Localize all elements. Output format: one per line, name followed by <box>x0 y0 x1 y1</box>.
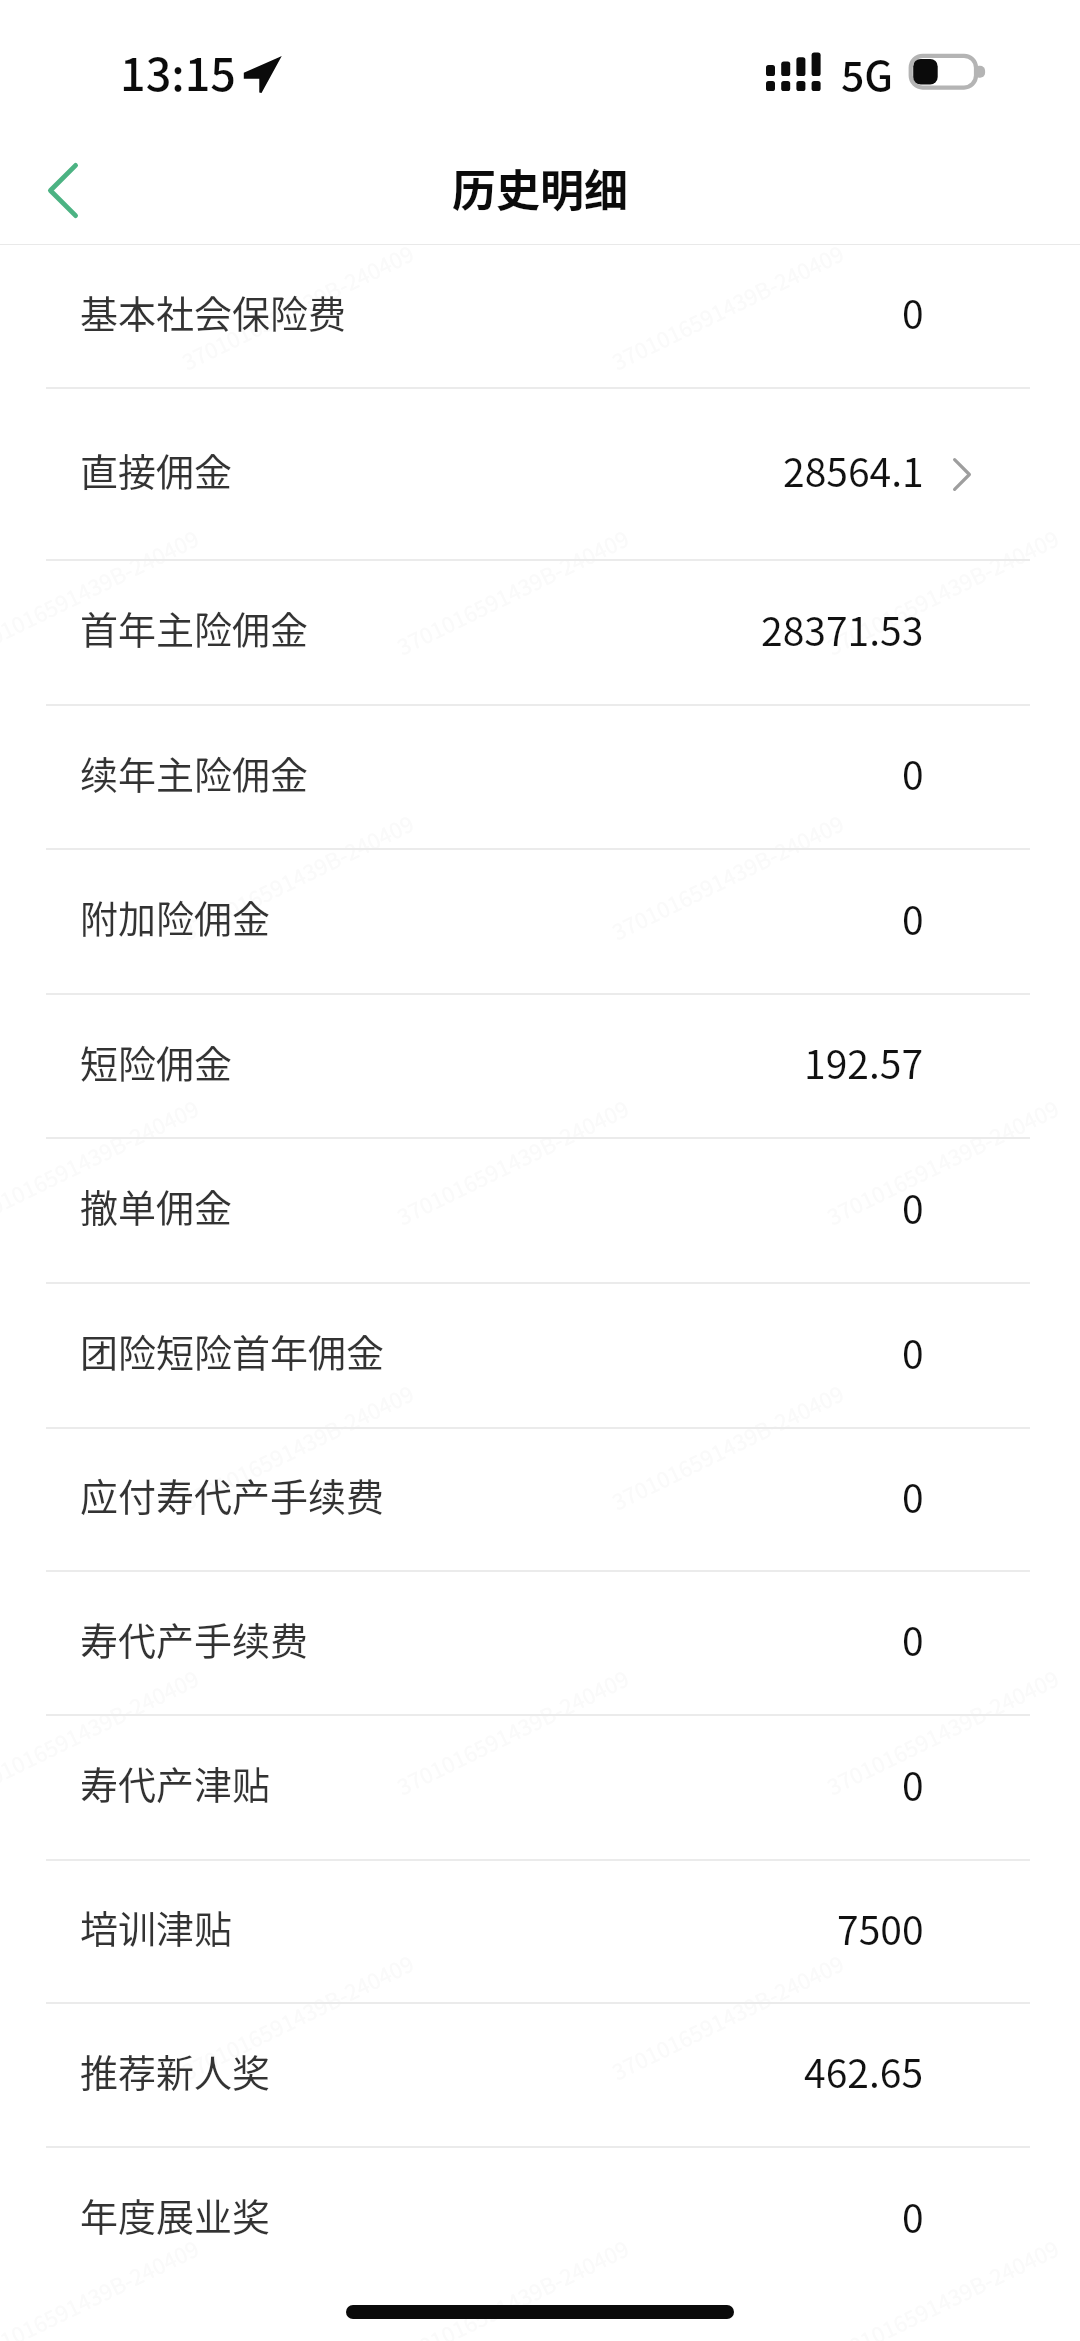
staticText: 3701016591439B-240409 <box>821 1661 1064 1801</box>
staticText: 5G <box>841 43 894 102</box>
staticText: 应付寿代产手续费 <box>80 1467 385 1522</box>
staticText: 首年主险佣金 <box>80 600 309 655</box>
staticText: 年度展业奖 <box>80 2187 271 2242</box>
staticText: 0 <box>902 2188 924 2244</box>
staticText: 寿代产手续费 <box>80 1611 309 1666</box>
staticText: 0 <box>902 1756 924 1812</box>
staticText: 0 <box>902 1179 924 1235</box>
staticText: 0 <box>902 1468 924 1524</box>
button[interactable]: 培训津贴 <box>0 1861 1080 2004</box>
staticText: 3701016591439B-240409 <box>176 1376 419 1516</box>
button[interactable]: Back <box>18 145 108 235</box>
staticText: 192.57 <box>804 1034 924 1090</box>
staticText: 0 <box>902 1324 924 1380</box>
staticText: 附加险佣金 <box>80 889 271 944</box>
staticText: 28371.53 <box>761 601 924 657</box>
staticText: 3701016591439B-240409 <box>176 1946 419 2086</box>
staticText: 推荐新人奖 <box>80 2043 271 2098</box>
staticText: 培训津贴 <box>80 1899 233 1954</box>
button[interactable]: 续年主险佣金 <box>0 706 1080 850</box>
button[interactable]: 直接佣金 <box>0 389 1080 561</box>
staticText: 3701016591439B-240409 <box>0 521 204 661</box>
staticText: 0 <box>902 745 924 801</box>
staticText: 3701016591439B-240409 <box>821 1091 1064 1231</box>
staticText: 3701016591439B-240409 <box>0 1661 204 1801</box>
button[interactable]: 推荐新人奖 <box>0 2004 1080 2148</box>
staticText: 13:15 <box>120 39 237 104</box>
staticText: 3701016591439B-240409 <box>821 521 1064 661</box>
button[interactable]: 附加险佣金 <box>0 850 1080 995</box>
staticText: 历史明细 <box>452 156 628 220</box>
staticText: 基本社会保险费 <box>80 284 347 339</box>
staticText: 7500 <box>837 1900 924 1956</box>
button[interactable]: 基本社会保险费 <box>0 245 1080 389</box>
staticText: 寿代产津贴 <box>80 1755 271 1810</box>
button[interactable]: 应付寿代产手续费 <box>0 1429 1080 1572</box>
button[interactable]: 年度展业奖 <box>0 2148 1080 2293</box>
staticText: 团险短险首年佣金 <box>80 1323 385 1378</box>
button[interactable]: 撤单佣金 <box>0 1139 1080 1284</box>
button[interactable]: 短险佣金 <box>0 995 1080 1139</box>
staticText: 直接佣金 <box>80 442 233 497</box>
staticText: 短险佣金 <box>80 1034 233 1089</box>
staticText: 3701016591439B-240409 <box>606 1946 849 2086</box>
staticText: 462.65 <box>804 2043 924 2099</box>
staticText: 3701016591439B-240409 <box>0 2231 204 2341</box>
staticText: 3701016591439B-240409 <box>176 236 419 376</box>
staticText: 0 <box>902 1611 924 1667</box>
button[interactable]: 首年主险佣金 <box>0 561 1080 706</box>
staticText: 3701016591439B-240409 <box>391 2231 634 2341</box>
staticText: 28564.1 <box>783 442 924 498</box>
staticText: 0 <box>902 284 924 340</box>
staticText: 3701016591439B-240409 <box>0 1091 204 1231</box>
staticText: 3701016591439B-240409 <box>821 2231 1064 2341</box>
button[interactable]: 团险短险首年佣金 <box>0 1284 1080 1429</box>
button[interactable]: 寿代产津贴 <box>0 1716 1080 1861</box>
staticText: 3701016591439B-240409 <box>176 806 419 946</box>
staticText: 撤单佣金 <box>80 1178 233 1233</box>
staticText: 0 <box>902 890 924 946</box>
button[interactable]: 寿代产手续费 <box>0 1572 1080 1716</box>
staticText: 续年主险佣金 <box>80 745 309 800</box>
